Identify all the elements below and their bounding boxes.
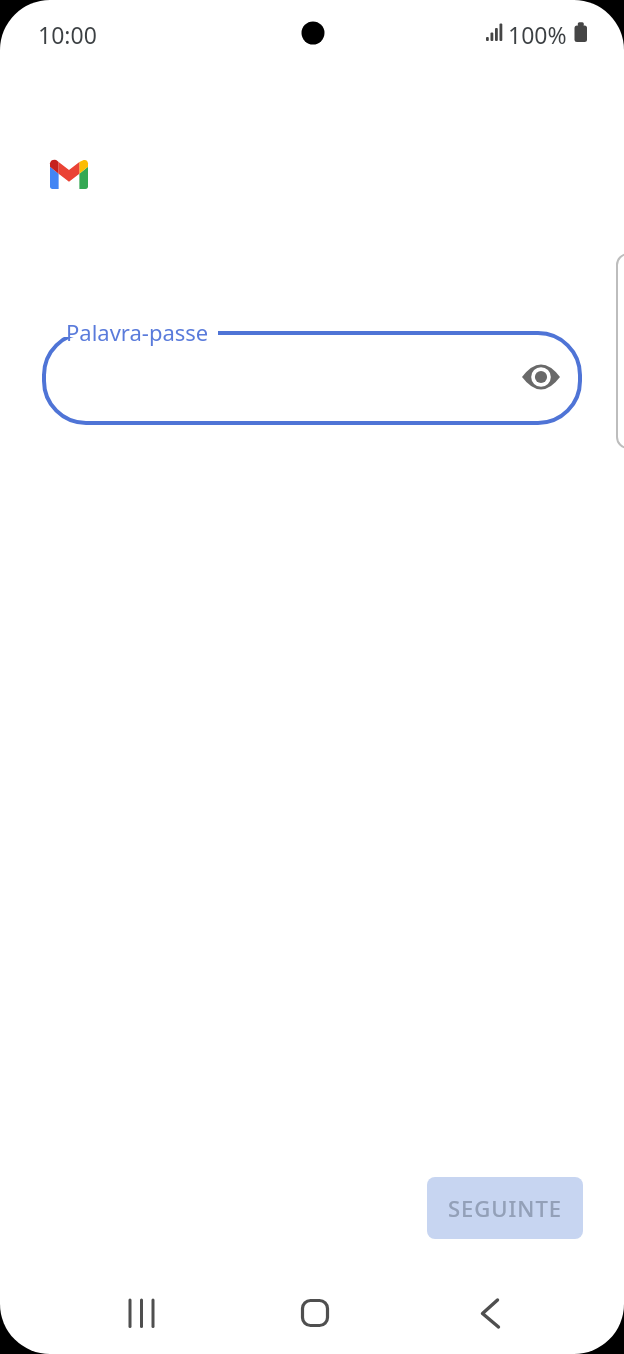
- staticText: Palavra-passe: [66, 317, 209, 347]
- staticText: 10:00: [38, 19, 97, 50]
- button[interactable]: SEGUINTE: [427, 1177, 583, 1239]
- button[interactable]: [462, 1285, 518, 1341]
- button[interactable]: [519, 355, 563, 399]
- staticText: 100%: [508, 19, 567, 50]
- button[interactable]: [113, 1285, 169, 1341]
- button[interactable]: [287, 1285, 343, 1341]
- staticText: SEGUINTE: [448, 1193, 563, 1223]
- button[interactable]: [42, 331, 582, 425]
